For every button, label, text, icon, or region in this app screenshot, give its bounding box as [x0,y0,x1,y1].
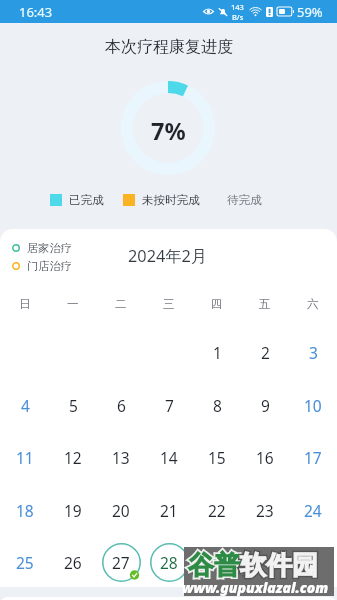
staticText: 16 [256,447,274,468]
staticText: 未按时完成 [142,193,200,207]
button[interactable]: 4 [5,385,45,425]
button[interactable]: 21 [149,490,189,530]
staticText: 7% [151,115,186,147]
staticText: 19 [64,500,82,521]
button[interactable]: 2 [245,332,285,372]
staticText: 27 [112,552,130,573]
button[interactable]: 19 [53,490,93,530]
button[interactable]: 3 [293,332,333,372]
staticText: 59% [297,3,323,21]
staticText: 软件园 [240,549,318,582]
staticText: 11 [16,447,34,468]
staticText: 18 [16,500,34,521]
button[interactable]: 居家治疗 [12,241,72,255]
button[interactable]: 26 [53,542,93,582]
button[interactable]: 23 [245,490,285,530]
button[interactable]: 27 [101,542,141,582]
staticText: 13 [112,447,130,468]
button[interactable]: 门店治疗 [12,259,72,273]
staticText: 25 [16,552,34,573]
staticText: 软件园 [240,549,318,582]
staticText: 2024年2月 [128,245,208,267]
button[interactable]: 未按时完成 [123,193,200,207]
button[interactable]: 11 [5,437,45,477]
staticText: 17 [304,447,322,468]
button[interactable]: 28 [149,542,189,582]
staticText: 谷普 [188,549,240,582]
button[interactable]: 16 [245,437,285,477]
staticText: 1 [213,342,222,363]
staticText: 14 [160,447,178,468]
staticText: 7 [165,395,174,416]
button[interactable]: 9 [245,385,285,425]
staticText: 居家治疗 [27,241,72,255]
staticText: 24 [304,500,322,521]
button[interactable]: 24 [293,490,333,530]
button[interactable]: 29 [197,542,237,582]
staticText: 16:43 [19,3,53,21]
button[interactable]: 22 [197,490,237,530]
staticText: 21 [160,500,178,521]
button[interactable]: 已完成 [50,193,104,207]
button[interactable]: 25 [5,542,45,582]
staticText: 6 [117,395,126,416]
button[interactable]: 20 [101,490,141,530]
staticText: 9 [261,395,270,416]
button[interactable]: 5 [53,385,93,425]
button[interactable]: 13 [101,437,141,477]
staticText: 15 [208,447,226,468]
button[interactable]: 12 [53,437,93,477]
button[interactable]: 7 [149,385,189,425]
staticText: 3 [309,342,318,363]
staticText: 29 [208,552,226,573]
staticText: 4 [21,395,30,416]
staticText: 8 [213,395,222,416]
staticText: 六 [307,297,319,311]
staticText: 10 [304,395,322,416]
button[interactable]: 6 [101,385,141,425]
staticText: 20 [112,500,130,521]
staticText: 五 [259,297,271,311]
staticText: B/s [232,12,244,22]
staticText: 22 [208,500,226,521]
button[interactable]: 15 [197,437,237,477]
staticText: 2 [261,342,270,363]
button[interactable]: 14 [149,437,189,477]
staticText: 谷普 [188,549,240,582]
button[interactable]: 8 [197,385,237,425]
staticText: 23 [256,500,274,521]
staticText: 12 [64,447,82,468]
button[interactable]: 17 [293,437,333,477]
staticText: 143 [231,2,244,12]
button[interactable]: 18 [5,490,45,530]
button[interactable]: 待完成 [227,193,262,207]
staticText: 三 [163,297,175,311]
staticText: 二 [115,297,127,311]
staticText: www.gupuxlazal.com [182,578,332,597]
staticText: 一 [67,297,79,311]
button[interactable]: 1 [197,332,237,372]
staticText: 28 [160,552,178,573]
staticText: 日 [19,297,31,311]
staticText: 门店治疗 [27,259,72,273]
staticText: 26 [64,552,82,573]
staticText: 本次疗程康复进度 [105,37,233,57]
button[interactable]: 10 [293,385,333,425]
staticText: 四 [211,297,223,311]
staticText: 5 [69,395,78,416]
staticText: 已完成 [69,193,104,207]
